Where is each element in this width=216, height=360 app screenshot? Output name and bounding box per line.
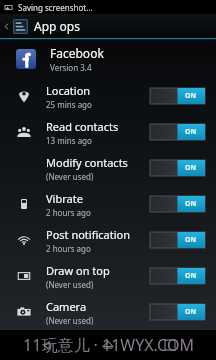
staticText: Post notification bbox=[46, 227, 131, 242]
staticText: 2 hours ago bbox=[46, 243, 91, 254]
button[interactable]: Read contacts switch, on bbox=[150, 124, 205, 140]
staticText: 13 mins ago bbox=[46, 135, 92, 146]
button[interactable]: Recents bbox=[155, 330, 185, 360]
button[interactable]: Modify contacts switch, on bbox=[150, 160, 205, 176]
staticText: Version 3.4 bbox=[50, 62, 92, 73]
button[interactable]: Home bbox=[93, 330, 123, 360]
staticText: (Never used) bbox=[46, 171, 94, 182]
staticText: Saving screenshot... bbox=[18, 2, 93, 13]
button[interactable]: Camera switch, on bbox=[150, 304, 205, 320]
button[interactable]: Post notification bbox=[0, 222, 216, 258]
button[interactable]: Location bbox=[0, 78, 216, 114]
staticText: Vibrate bbox=[46, 191, 83, 206]
staticText: Draw on top bbox=[46, 263, 110, 278]
button[interactable]: Draw on top bbox=[0, 258, 216, 294]
button[interactable]: Vibrate bbox=[0, 186, 216, 222]
button[interactable]: Location switch, on bbox=[150, 88, 205, 104]
staticText: ON bbox=[185, 163, 197, 173]
staticText: 25 mins ago bbox=[46, 99, 92, 110]
button[interactable]: Read contacts bbox=[0, 114, 216, 150]
staticText: Read contacts bbox=[46, 119, 119, 134]
staticText: Camera bbox=[46, 299, 87, 314]
staticText: 11玩意儿 · 11WYX.COM bbox=[23, 334, 194, 356]
button[interactable]: Back bbox=[0, 14, 216, 38]
staticText: App ops bbox=[34, 18, 80, 34]
button[interactable]: Back bbox=[32, 330, 62, 360]
staticText: 2 hours ago bbox=[46, 207, 91, 218]
staticText: Location bbox=[46, 83, 91, 98]
staticText: ON bbox=[185, 235, 197, 245]
button[interactable]: Draw on top switch, on bbox=[150, 268, 205, 284]
staticText: ON bbox=[185, 307, 197, 317]
button[interactable]: Vibrate switch, on bbox=[150, 196, 205, 212]
button[interactable]: Post notification switch, on bbox=[150, 232, 205, 248]
button[interactable]: Modify contacts bbox=[0, 150, 216, 186]
staticText: ON bbox=[185, 199, 197, 209]
staticText: (Never used) bbox=[46, 315, 94, 326]
staticText: ON bbox=[185, 127, 197, 137]
staticText: (Never used) bbox=[46, 279, 94, 290]
button[interactable]: Facebook bbox=[0, 40, 216, 78]
staticText: ON bbox=[185, 271, 197, 281]
staticText: Facebook bbox=[50, 45, 104, 61]
other: Back bbox=[3, 23, 10, 30]
button[interactable]: Camera bbox=[0, 294, 216, 330]
staticText: ON bbox=[185, 91, 197, 101]
staticText: Modify contacts bbox=[46, 155, 128, 170]
